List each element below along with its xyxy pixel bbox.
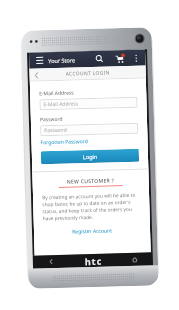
staticText: E-Mail Address: [43, 100, 79, 108]
button[interactable]: Back: [33, 255, 70, 269]
button[interactable]: Register Account: [72, 227, 112, 235]
staticText: NEW CUSTOMER ?: [66, 176, 115, 185]
staticText: By creating an account you will be able …: [42, 192, 141, 222]
staticText: ACCOUNT LOGIN: [66, 69, 111, 78]
button[interactable]: Login: [41, 149, 139, 164]
button[interactable]: E-Mail Address: [39, 97, 138, 110]
staticText: E-Mail Address: [39, 89, 74, 97]
button[interactable]: Menu: [33, 52, 45, 68]
staticText: htc: [85, 255, 103, 267]
button[interactable]: Shopping cart: [112, 50, 126, 66]
button[interactable]: Back: [29, 68, 44, 82]
button[interactable]: More options: [131, 49, 141, 66]
staticText: Forgotten Password: [40, 138, 89, 146]
staticText: Your Store: [48, 56, 75, 64]
staticText: Password: [40, 116, 63, 123]
button[interactable]: Forgotten Password: [40, 138, 89, 146]
staticText: Login: [83, 153, 98, 160]
staticText: Register Account: [72, 227, 112, 235]
button[interactable]: Password: [40, 123, 138, 136]
button[interactable]: Home: [117, 252, 153, 266]
button[interactable]: Search: [92, 50, 106, 67]
staticText: Password: [44, 127, 67, 134]
